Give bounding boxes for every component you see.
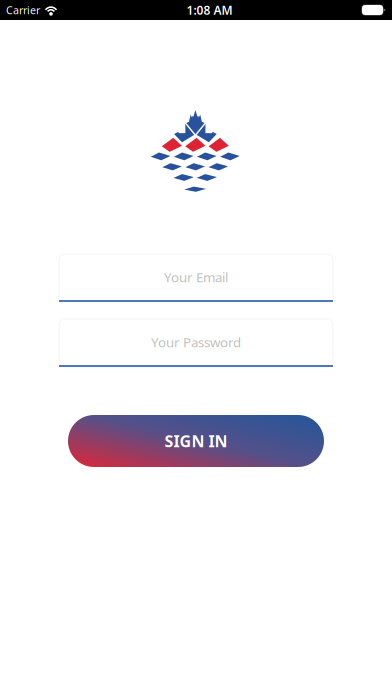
button[interactable]: Your Email xyxy=(59,254,333,302)
staticText: SIGN IN xyxy=(164,430,227,452)
staticText: 1:08 AM xyxy=(186,2,232,18)
staticText: Carrier xyxy=(6,3,40,17)
staticText: Your Email xyxy=(164,268,228,286)
button[interactable]: Your Password xyxy=(59,319,333,367)
button[interactable]: SIGN IN xyxy=(68,415,324,467)
staticText: Your Password xyxy=(151,333,241,351)
